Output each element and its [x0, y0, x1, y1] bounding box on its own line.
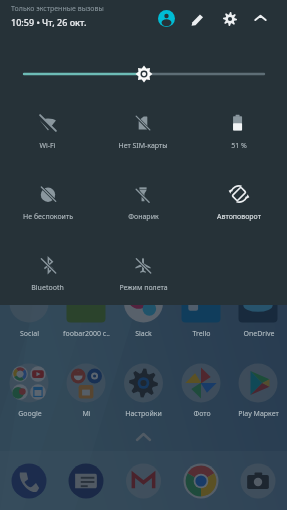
staticText: Google — [18, 409, 42, 419]
staticText: 51 % — [231, 141, 247, 151]
button[interactable]: Нет SIM-карты — [95, 100, 191, 171]
button[interactable]: User — [150, 5, 182, 32]
button[interactable]: Автоповорот — [191, 171, 287, 242]
staticText: Wi-Fi — [39, 141, 56, 151]
staticText: Bluetooth — [31, 283, 64, 293]
staticText: Trello — [192, 329, 211, 339]
button[interactable]: Wi-Fi — [0, 100, 95, 171]
button[interactable]: Edit tiles — [182, 5, 214, 32]
staticText: Настройки — [125, 409, 162, 419]
staticText: 10:59 • Чт, 26 окт. — [11, 16, 87, 28]
button[interactable]: Не беспокоить — [0, 171, 95, 242]
staticText: Фонарик — [128, 212, 159, 222]
button[interactable]: Collapse — [245, 5, 275, 32]
staticText: Автоповорот — [217, 212, 261, 222]
button[interactable]: 51 % — [191, 100, 287, 171]
button[interactable]: Brightness — [0, 60, 287, 88]
staticText: Play Маркет — [238, 409, 279, 419]
staticText: Фото — [193, 409, 211, 419]
staticText: Только экстренные вызовы — [11, 4, 104, 14]
button[interactable]: Фонарик — [95, 171, 191, 242]
staticText: Social — [20, 329, 39, 339]
staticText: Mi — [82, 409, 91, 419]
staticText: Не беспокоить — [23, 212, 73, 222]
staticText: Slack — [135, 329, 152, 339]
staticText: OneDrive — [243, 329, 275, 339]
staticText: foobar2000 c.. — [63, 329, 110, 339]
button[interactable]: Режим полета — [95, 242, 191, 313]
button[interactable]: Bluetooth — [0, 242, 95, 313]
button[interactable]: Settings — [214, 5, 245, 32]
staticText: Режим полета — [119, 283, 168, 293]
staticText: Нет SIM-карты — [118, 141, 168, 151]
